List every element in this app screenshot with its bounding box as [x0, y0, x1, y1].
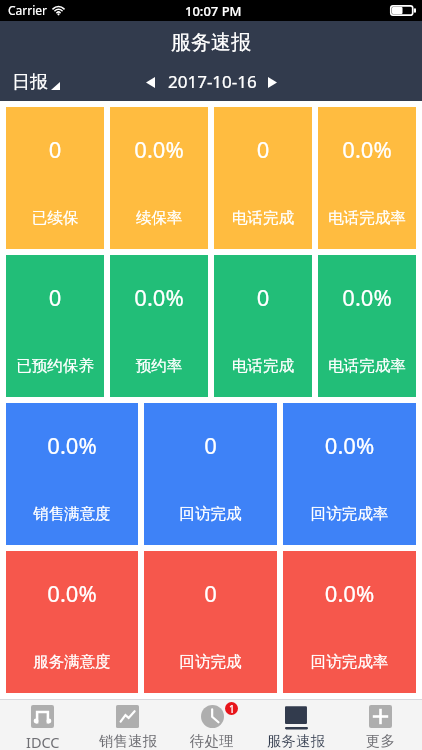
button[interactable]: 0	[214, 255, 312, 397]
staticText: 销售满意度	[6, 504, 138, 524]
staticText: 0.0%	[6, 430, 138, 460]
button[interactable]: 0.0%	[318, 107, 416, 249]
button[interactable]: 0.0%	[283, 403, 416, 545]
staticText: 0	[144, 430, 277, 460]
staticText: 0	[6, 282, 104, 312]
button[interactable]: 0.0%	[6, 551, 138, 693]
staticText: 0	[214, 282, 312, 312]
staticText: 日报	[12, 71, 48, 94]
button[interactable]: 0	[144, 551, 277, 693]
staticText: 已预约保养	[6, 356, 104, 376]
button[interactable]: 日报	[12, 71, 62, 94]
staticText: Carrier	[8, 2, 48, 18]
staticText: 销售速报	[99, 732, 157, 750]
staticText: 回访完成	[144, 504, 277, 524]
staticText: 0.0%	[110, 134, 208, 164]
staticText: 0.0%	[283, 578, 416, 608]
button[interactable]: 0	[6, 255, 104, 397]
staticText: 2017-10-16	[168, 70, 257, 93]
button[interactable]: 0.0%	[6, 403, 138, 545]
staticText: 服务速报	[267, 732, 325, 750]
staticText: 电话完成	[214, 356, 312, 376]
staticText: 更多	[366, 732, 395, 750]
staticText: 电话完成率	[318, 356, 416, 376]
staticText: IDCC	[26, 732, 60, 750]
staticText: 电话完成	[214, 208, 312, 228]
staticText: 0	[144, 578, 277, 608]
staticText: 电话完成率	[318, 208, 416, 228]
staticText: 续保率	[110, 208, 208, 228]
button[interactable]: 0	[144, 403, 277, 545]
staticText: 预约率	[110, 356, 208, 376]
staticText: 0	[6, 134, 104, 164]
staticText: 回访完成率	[283, 652, 416, 672]
staticText: 回访完成	[144, 652, 277, 672]
button[interactable]: 0.0%	[283, 551, 416, 693]
button[interactable]: 0.0%	[318, 255, 416, 397]
button[interactable]: 服务速报	[254, 700, 338, 750]
staticText: 待处理	[190, 732, 234, 750]
staticText: 0	[214, 134, 312, 164]
staticText: 已续保	[6, 208, 104, 228]
button[interactable]: 0	[6, 107, 104, 249]
button[interactable]: Next day	[260, 70, 284, 94]
staticText: 10:07 PM	[185, 2, 242, 20]
button[interactable]: 销售速报	[85, 700, 170, 750]
staticText: 0.0%	[283, 430, 416, 460]
staticText: 服务满意度	[6, 652, 138, 672]
staticText: 0.0%	[6, 578, 138, 608]
button[interactable]: 0.0%	[110, 107, 208, 249]
staticText: 服务速报	[171, 30, 251, 55]
button[interactable]: 更多	[338, 700, 422, 750]
button[interactable]: IDCC	[0, 700, 85, 750]
staticText: 0.0%	[318, 134, 416, 164]
staticText: 回访完成率	[283, 504, 416, 524]
staticText: 0.0%	[318, 282, 416, 312]
button[interactable]: 0	[214, 107, 312, 249]
button[interactable]: Previous day	[138, 70, 162, 94]
staticText: 1	[229, 702, 235, 715]
staticText: 0.0%	[110, 282, 208, 312]
button[interactable]: 0.0%	[110, 255, 208, 397]
button[interactable]: 1	[170, 700, 254, 750]
